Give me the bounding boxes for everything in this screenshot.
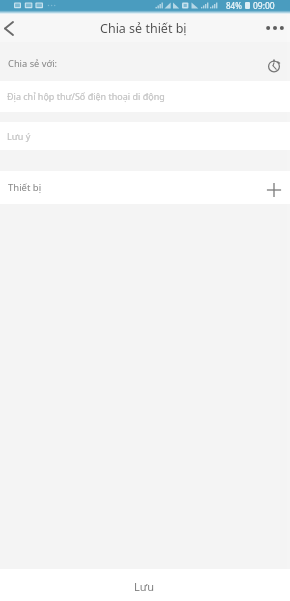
button[interactable]: More options <box>260 14 290 42</box>
button[interactable]: Timer <box>264 56 284 76</box>
button[interactable]: Lưu ý <box>0 122 290 150</box>
staticText: Thiết bị <box>8 181 42 194</box>
staticText: Địa chỉ hộp thư/Số điện thoại di động <box>7 90 165 102</box>
button[interactable]: Back <box>0 14 17 42</box>
staticText: Lưu ý <box>7 130 31 142</box>
button[interactable]: Chia sẻ với: <box>0 42 290 81</box>
staticText: Chia sẻ thiết bị <box>100 20 187 37</box>
button[interactable]: Địa chỉ hộp thư/Số điện thoại di động <box>0 81 290 112</box>
staticText: 84% <box>226 0 242 11</box>
staticText: Chia sẻ với: <box>8 57 58 70</box>
staticText: Lưu <box>134 579 154 594</box>
button[interactable]: Lưu <box>0 569 290 601</box>
button[interactable]: Thiết bị <box>0 171 290 204</box>
button[interactable]: Add device <box>264 180 284 200</box>
staticText: 09:00 <box>253 0 275 11</box>
